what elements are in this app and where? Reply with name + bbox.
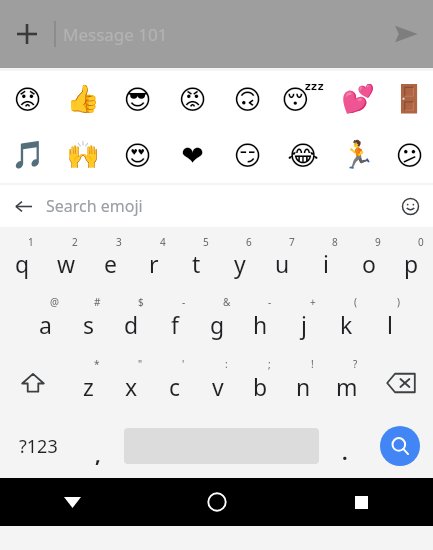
button[interactable]: 0: [390, 230, 433, 290]
staticText: x: [125, 371, 138, 402]
button[interactable]: Back: [0, 185, 46, 227]
button[interactable]: 🙃: [220, 71, 275, 127]
staticText: j: [301, 309, 307, 340]
button[interactable]: 😍: [110, 127, 165, 183]
staticText: ,: [95, 441, 101, 468]
button[interactable]: +: [282, 290, 325, 352]
staticText: 👍: [66, 83, 100, 115]
button[interactable]: -: [239, 290, 282, 352]
staticText: m: [336, 371, 358, 402]
staticText: 💕: [341, 83, 375, 115]
button[interactable]: (: [325, 290, 368, 352]
button[interactable]: 5: [175, 230, 218, 290]
staticText: 😂: [287, 140, 319, 171]
button[interactable]: ?123: [0, 414, 76, 478]
button[interactable]: Emoji categories: [387, 185, 433, 227]
staticText: o: [362, 248, 376, 279]
button[interactable]: Hide keyboard: [0, 478, 145, 526]
button[interactable]: &: [196, 290, 239, 352]
button[interactable]: #: [67, 290, 110, 352]
button[interactable]: Home: [145, 478, 289, 526]
staticText: ;: [268, 357, 271, 371]
staticText: 6: [246, 235, 252, 249]
button[interactable]: Send: [379, 7, 433, 61]
button[interactable]: *: [66, 352, 110, 414]
staticText: 😏: [233, 140, 262, 171]
button[interactable]: ?: [325, 352, 368, 414]
staticText: +: [310, 295, 316, 309]
button[interactable]: 4: [132, 230, 175, 290]
staticText: #: [94, 295, 101, 309]
button[interactable]: ;: [239, 352, 282, 414]
staticText: e: [104, 248, 117, 279]
staticText: $: [138, 295, 144, 309]
button[interactable]: Recent apps: [289, 478, 433, 526]
button[interactable]: 8: [304, 230, 347, 290]
button[interactable]: 🏃: [330, 127, 385, 183]
button[interactable]: 😕: [385, 127, 433, 183]
button[interactable]: 😴: [275, 71, 330, 127]
button[interactable]: 1: [0, 230, 44, 290]
button[interactable]: ❤️: [165, 127, 220, 183]
button[interactable]: 2: [44, 230, 88, 290]
staticText: 😍: [123, 140, 152, 171]
button[interactable]: @: [23, 290, 67, 352]
button[interactable]: 😡: [165, 71, 220, 127]
staticText: 😎: [123, 84, 152, 115]
button[interactable]: $: [110, 290, 153, 352]
staticText: y: [234, 248, 246, 279]
staticText: ?123: [19, 434, 58, 459]
staticText: ': [182, 357, 185, 371]
button[interactable]: ": [110, 352, 153, 414]
staticText: Message 101: [63, 23, 168, 46]
staticText: *: [94, 357, 100, 371]
staticText: 2: [72, 235, 78, 249]
staticText: a: [39, 309, 52, 340]
button[interactable]: 👍: [55, 71, 110, 127]
staticText: q: [15, 248, 30, 279]
staticText: ?: [353, 357, 358, 371]
staticText: c: [169, 371, 181, 402]
button[interactable]: 😟: [0, 71, 55, 127]
button[interactable]: 3: [88, 230, 132, 290]
button[interactable]: 💕: [330, 71, 385, 127]
staticText: !: [311, 357, 314, 371]
staticText: b: [253, 371, 268, 402]
button[interactable]: 😂: [275, 127, 330, 183]
button[interactable]: ,: [76, 414, 120, 478]
button[interactable]: 😎: [110, 71, 165, 127]
button[interactable]: !: [282, 352, 325, 414]
staticText: 😡: [178, 84, 207, 115]
staticText: k: [340, 309, 353, 340]
staticText: ": [138, 357, 143, 371]
staticText: ❤️: [181, 140, 204, 171]
button[interactable]: 🎵: [0, 127, 55, 183]
button[interactable]: 🙌: [55, 127, 110, 183]
staticText: 🙌: [66, 139, 100, 171]
button[interactable]: :: [196, 352, 239, 414]
button[interactable]: 7: [261, 230, 304, 290]
button[interactable]: 😏: [220, 127, 275, 183]
button[interactable]: Backspace: [368, 352, 433, 414]
staticText: d: [124, 309, 139, 340]
button[interactable]: ': [153, 352, 196, 414]
button[interactable]: Shift: [0, 352, 66, 414]
staticText: w: [57, 248, 76, 279]
staticText: i: [323, 248, 329, 279]
button[interactable]: 9: [347, 230, 390, 290]
button[interactable]: .: [323, 414, 367, 478]
button[interactable]: ): [368, 290, 411, 352]
staticText: h: [253, 309, 268, 340]
staticText: n: [296, 371, 311, 402]
button[interactable]: 🚪: [385, 71, 433, 127]
staticText: r: [149, 248, 159, 279]
button[interactable]: Add attachment: [0, 7, 54, 61]
staticText: ): [397, 295, 400, 309]
button[interactable]: 6: [218, 230, 261, 290]
staticText: p: [404, 248, 419, 279]
button[interactable]: Search: [367, 414, 433, 478]
staticText: 1: [28, 235, 34, 249]
staticText: 7: [289, 235, 295, 249]
button[interactable]: -: [153, 290, 196, 352]
